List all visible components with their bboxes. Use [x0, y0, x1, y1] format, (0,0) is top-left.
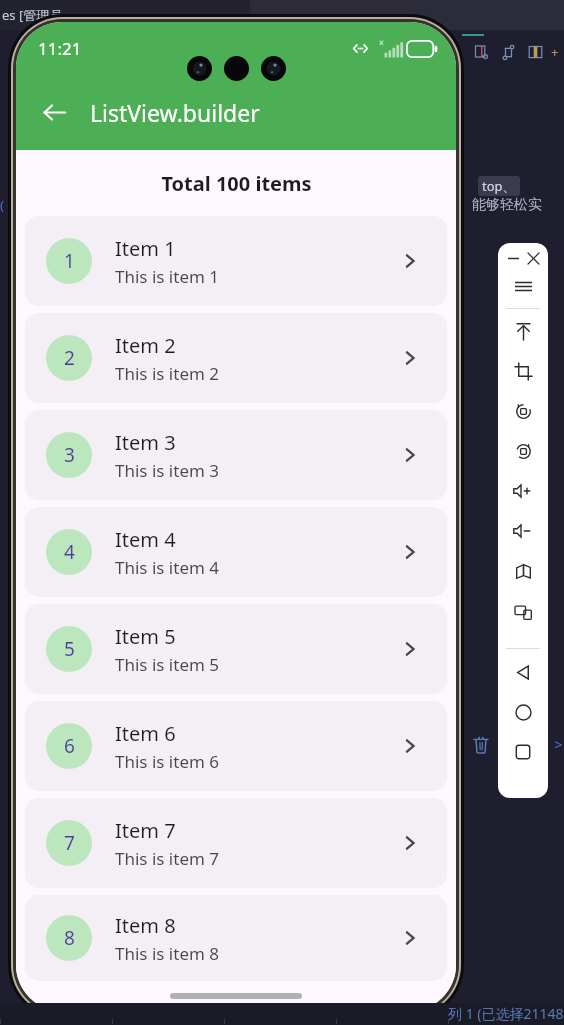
staticText: Total 100 items — [161, 170, 312, 197]
button[interactable]: 3 — [25, 410, 447, 500]
staticText: This is item 6 — [115, 750, 220, 773]
button[interactable]: Screenshot — [503, 351, 543, 391]
staticText: top、 — [482, 177, 516, 195]
staticText: 5 — [64, 636, 75, 662]
staticText: 8 — [64, 925, 75, 951]
staticText: 2 — [64, 345, 75, 371]
button[interactable]: Home — [503, 692, 543, 732]
button[interactable]: Rotate right — [503, 431, 543, 471]
staticText: Item 7 — [115, 817, 176, 844]
button[interactable]: 4 — [25, 507, 447, 597]
other: Open item 2 — [395, 343, 425, 373]
button[interactable]: 8 — [25, 895, 447, 981]
button[interactable]: Recents — [503, 732, 543, 772]
staticText: 能够轻松实 — [472, 196, 542, 214]
staticText: This is item 3 — [115, 459, 220, 482]
staticText: This is item 8 — [115, 942, 220, 965]
staticText: Item 4 — [115, 526, 176, 553]
staticText: This is item 5 — [115, 653, 220, 676]
button[interactable]: Volume down — [503, 511, 543, 551]
staticText: This is item 1 — [115, 265, 220, 288]
staticText: Item 2 — [115, 332, 176, 359]
staticText: Item 6 — [115, 720, 176, 747]
other: Open item 7 — [395, 828, 425, 858]
button[interactable]: Volume up — [503, 471, 543, 511]
button[interactable]: Minimize — [505, 250, 521, 266]
staticText: This is item 4 — [115, 556, 220, 579]
staticText: Item 3 — [115, 429, 176, 456]
other: Open item 4 — [395, 537, 425, 567]
staticText: ListView.builder — [90, 97, 260, 128]
button[interactable]: Power — [503, 311, 543, 351]
other: Open item 6 — [395, 731, 425, 761]
staticText: 3 — [64, 442, 75, 468]
button[interactable]: Close — [525, 250, 541, 266]
other: Open item 1 — [395, 246, 425, 276]
button[interactable]: Rotate left — [503, 391, 543, 431]
staticText: > — [554, 734, 563, 754]
button[interactable]: Multi screen — [503, 591, 543, 631]
staticText: Item 8 — [115, 912, 176, 939]
staticText: Item 5 — [115, 623, 176, 650]
other: Open item 3 — [395, 440, 425, 470]
staticText: Item 1 — [115, 235, 176, 262]
button[interactable]: 7 — [25, 798, 447, 888]
button[interactable]: 1 — [25, 216, 447, 306]
button[interactable]: 5 — [25, 604, 447, 694]
staticText: 6 — [64, 733, 75, 759]
button[interactable]: 6 — [25, 701, 447, 791]
staticText: 7 — [64, 830, 75, 856]
staticText: 列 1 (已选择21148) — [448, 1004, 564, 1023]
staticText: This is item 2 — [115, 362, 220, 385]
button[interactable]: 2 — [25, 313, 447, 403]
button[interactable]: Menu — [503, 266, 543, 306]
other: Open item 8 — [395, 923, 425, 953]
button[interactable]: Fold — [503, 551, 543, 591]
button[interactable]: Back — [503, 652, 543, 692]
staticText: es [管理员 — [2, 6, 63, 24]
staticText: 4 — [64, 539, 75, 565]
staticText: 11:21 — [38, 37, 82, 60]
staticText: ( — [0, 196, 4, 214]
staticText: 1 — [64, 248, 75, 274]
staticText: + — [551, 43, 559, 61]
staticText: This is item 7 — [115, 847, 220, 870]
other: Open item 5 — [395, 634, 425, 664]
button[interactable]: Back — [30, 88, 78, 136]
